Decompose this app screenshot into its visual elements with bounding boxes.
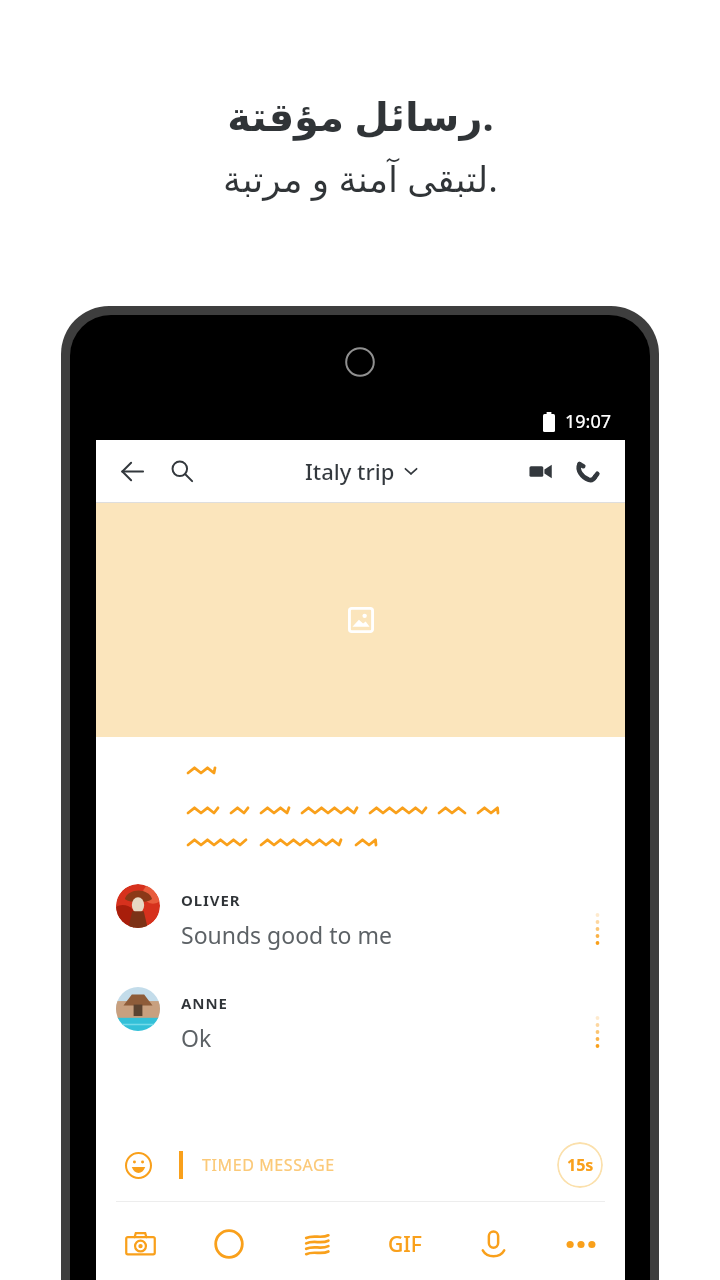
staticText: OLIVER bbox=[181, 890, 241, 910]
button[interactable]: Doodle bbox=[273, 1202, 361, 1280]
button[interactable]: Italy trip bbox=[205, 440, 517, 502]
staticText: 19:07 bbox=[565, 409, 612, 434]
button[interactable]: Timer 15 seconds bbox=[557, 1142, 603, 1188]
staticText: 15s bbox=[567, 1154, 594, 1176]
staticText: رسائل مؤقتة. bbox=[227, 88, 494, 142]
button[interactable]: OLIVER bbox=[96, 873, 625, 976]
button[interactable]: Emoji bbox=[120, 1147, 156, 1183]
button[interactable]: Message options bbox=[581, 913, 613, 945]
staticText: Ok bbox=[181, 1022, 212, 1053]
button[interactable]: Emoji bbox=[96, 1129, 625, 1201]
button[interactable]: Search bbox=[159, 448, 205, 494]
staticText: ANNE bbox=[181, 993, 228, 1013]
button[interactable]: Camera bbox=[96, 1202, 185, 1280]
button[interactable]: GIF bbox=[361, 1202, 449, 1280]
button[interactable]: ANNE bbox=[96, 976, 625, 1079]
button[interactable]: Message options bbox=[581, 1016, 613, 1048]
button[interactable]: Voice message bbox=[449, 1202, 537, 1280]
button[interactable]: Call bbox=[563, 448, 609, 494]
staticText: GIF bbox=[388, 1230, 422, 1259]
staticText: Sounds good to me bbox=[181, 919, 392, 950]
button[interactable]: Back bbox=[109, 448, 155, 494]
button[interactable]: Video call bbox=[517, 448, 563, 494]
button[interactable]: Shared photo bbox=[96, 503, 625, 737]
staticText: Italy trip bbox=[305, 456, 395, 486]
staticText: TIMED MESSAGE bbox=[202, 1154, 557, 1176]
button[interactable]: Capture bbox=[185, 1202, 273, 1280]
staticText: لتبقى آمنة و مرتبة. bbox=[223, 154, 498, 203]
button[interactable]: More bbox=[537, 1202, 625, 1280]
